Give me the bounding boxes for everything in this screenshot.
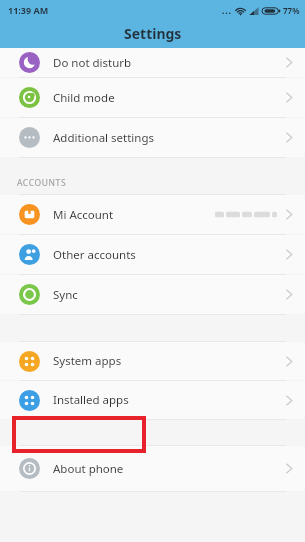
other: Other accounts — [19, 244, 40, 265]
button[interactable]: About phone — [0, 446, 305, 491]
button[interactable]: Other accounts — [0, 235, 305, 274]
button[interactable]: Additional settings — [0, 118, 305, 157]
staticText: ACCOUNTS — [17, 177, 67, 189]
staticText: Sync — [53, 287, 78, 303]
staticText: Settings — [124, 24, 182, 43]
other: Child mode — [19, 87, 40, 108]
button[interactable]: System apps — [0, 342, 305, 380]
other: Additional settings — [19, 127, 40, 148]
other: Installed apps — [19, 390, 40, 411]
other: Do not disturb — [19, 52, 40, 73]
other: About phone — [19, 458, 40, 479]
staticText: Mi Account — [53, 207, 114, 223]
button[interactable]: Installed apps — [0, 381, 305, 419]
button[interactable]: Child mode — [0, 78, 305, 117]
other: System apps — [19, 351, 40, 372]
other: Sync — [19, 284, 40, 305]
staticText: Other accounts — [53, 247, 136, 263]
other: Mi Account — [19, 204, 40, 225]
button[interactable]: Sync — [0, 275, 305, 314]
staticText: Child mode — [53, 90, 115, 106]
staticText: Additional settings — [53, 130, 155, 146]
button[interactable]: Mi Account — [0, 195, 305, 234]
staticText: Do not disturb — [53, 55, 132, 71]
staticText: About phone — [53, 461, 124, 477]
button[interactable]: Do not disturb — [0, 48, 305, 77]
staticText: 11:39 AM — [8, 4, 49, 16]
staticText: 77% — [283, 5, 300, 16]
staticText: Installed apps — [53, 392, 129, 408]
staticText: System apps — [53, 353, 122, 369]
